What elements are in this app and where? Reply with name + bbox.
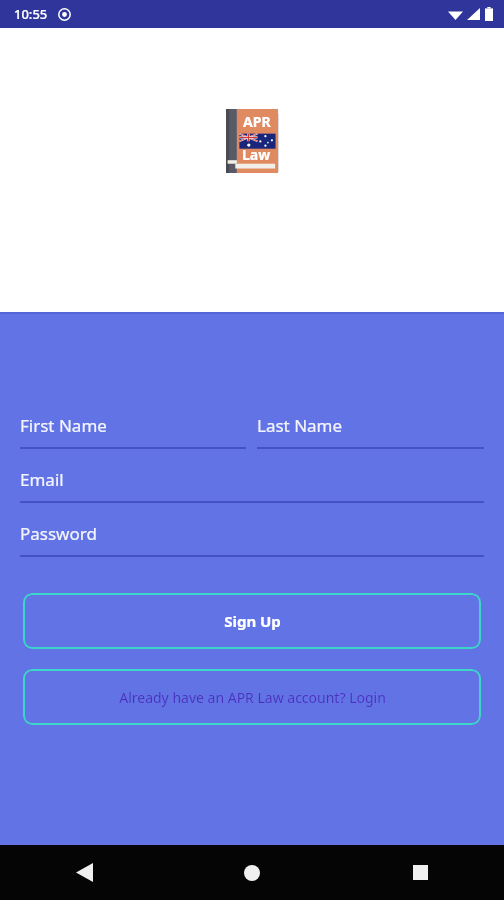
staticText: APR	[243, 112, 271, 131]
button[interactable]: Recent apps	[336, 845, 504, 900]
staticText: Sign Up	[224, 611, 281, 631]
staticText: First Name	[20, 414, 107, 437]
button[interactable]: APR Law logo	[226, 109, 278, 173]
button[interactable]: Email	[20, 468, 484, 503]
staticText: Last Name	[257, 414, 343, 437]
button[interactable]: Sign Up	[23, 593, 481, 649]
button[interactable]: Last Name	[257, 414, 484, 449]
button[interactable]: Home	[168, 845, 336, 900]
button[interactable]: First Name	[20, 414, 246, 449]
button[interactable]: Back	[0, 845, 168, 900]
staticText: Already have an APR Law account? Login	[119, 688, 386, 707]
staticText: Email	[20, 468, 64, 491]
staticText: Law	[242, 145, 271, 164]
staticText: Password	[20, 522, 97, 545]
staticText: 10:55	[14, 5, 48, 23]
button[interactable]: Already have an APR Law account? Login	[23, 669, 481, 725]
button[interactable]: Password	[20, 522, 484, 557]
